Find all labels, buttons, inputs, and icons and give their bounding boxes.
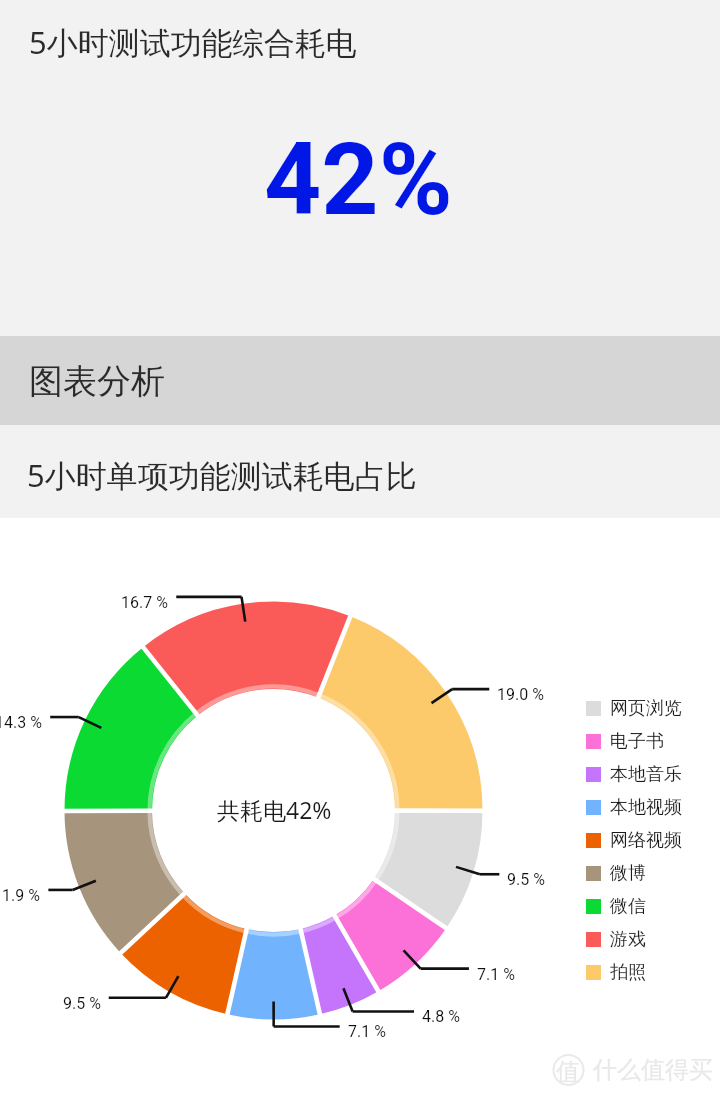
staticText: 拍照 <box>610 961 646 984</box>
staticText: 值 <box>556 1057 580 1087</box>
staticText: 本地视频 <box>610 796 682 819</box>
button[interactable]: 图表分析 <box>0 336 720 425</box>
staticText: 14.3 % <box>0 713 42 732</box>
staticText: 网络视频 <box>610 829 682 852</box>
staticText: 5小时单项功能测试耗电占比 <box>27 454 417 496</box>
staticText: 7.1 % <box>477 965 515 984</box>
button[interactable]: 微信 <box>586 890 698 923</box>
staticText: 共耗电42% <box>217 794 332 825</box>
staticText: 5小时测试功能综合耗电 <box>29 21 357 63</box>
staticText: 微博 <box>610 862 646 885</box>
button[interactable]: 电子书 <box>586 725 698 758</box>
button[interactable]: 微博 <box>586 857 698 890</box>
button[interactable]: 本地视频 <box>586 791 698 824</box>
button[interactable]: 本地音乐 <box>586 758 698 791</box>
staticText: 11.9 % <box>0 886 40 905</box>
staticText: 4.8 % <box>422 1007 460 1026</box>
other: 耗电占比环形图 <box>0 0 720 1096</box>
staticText: 游戏 <box>610 928 646 951</box>
button[interactable]: 游戏 <box>586 923 698 956</box>
staticText: 图表分析 <box>29 360 165 403</box>
button[interactable]: 网页浏览 <box>586 692 698 725</box>
staticText: 16.7 % <box>121 593 168 612</box>
staticText: 7.1 % <box>348 1022 386 1041</box>
staticText: 什么值得买 <box>593 1055 713 1085</box>
staticText: 9.5 % <box>63 994 101 1013</box>
staticText: 网页浏览 <box>610 697 682 720</box>
button[interactable]: 拍照 <box>586 956 698 989</box>
staticText: 电子书 <box>610 730 664 753</box>
staticText: 9.5 % <box>507 870 545 889</box>
staticText: 本地音乐 <box>610 763 682 786</box>
staticText: 19.0 % <box>497 685 544 704</box>
staticText: 微信 <box>610 895 646 918</box>
button[interactable]: 网络视频 <box>586 824 698 857</box>
staticText: 42% <box>264 121 453 238</box>
